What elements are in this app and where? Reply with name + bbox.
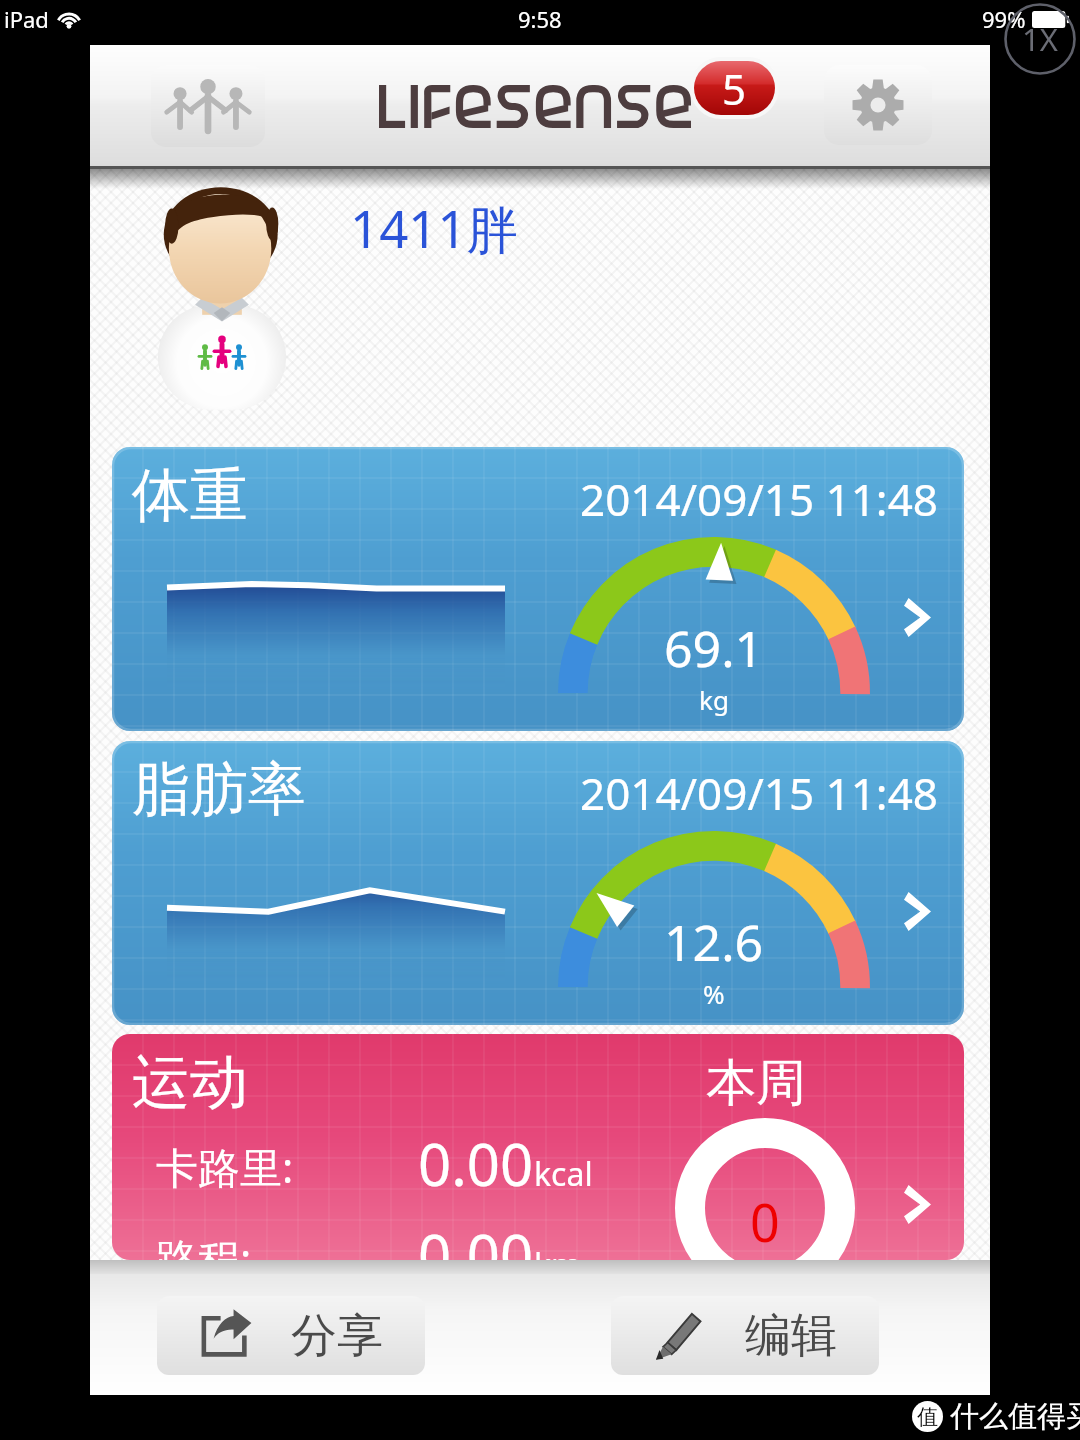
staticText: 分享 [291, 1307, 383, 1365]
button[interactable]: 运动 [112, 1034, 964, 1260]
staticText: 99% [982, 4, 1026, 34]
staticText: 9:58 [518, 4, 562, 34]
staticText: 1X [1022, 18, 1058, 60]
staticText: 5 [722, 61, 747, 114]
staticText: 本周 [706, 1052, 806, 1115]
staticText: % [703, 976, 725, 1011]
button[interactable]: 脂肪率 [112, 741, 964, 1025]
staticText: 路程: [156, 1229, 252, 1260]
staticText: iPad [4, 4, 49, 34]
staticText: 什么值得买 [950, 1398, 1080, 1435]
staticText: 69.1 [664, 614, 764, 682]
staticText: 0.00 [418, 1124, 534, 1203]
staticText: 编辑 [745, 1307, 837, 1365]
staticText: 卡路里: [156, 1138, 294, 1195]
staticText: 2014/09/15 11:48 [580, 763, 938, 823]
staticText: 0.00 [418, 1215, 534, 1260]
button[interactable]: Settings [824, 65, 932, 145]
staticText: 体重 [132, 459, 248, 532]
button[interactable]: 分享 [157, 1296, 425, 1375]
button[interactable]: Friends [151, 65, 265, 147]
staticText: 脂肪率 [132, 753, 306, 826]
button[interactable]: 1411胖 [90, 169, 990, 447]
button[interactable]: 编辑 [611, 1296, 879, 1375]
staticText: 1411胖 [350, 193, 518, 263]
staticText: 值 [917, 1404, 938, 1430]
button[interactable]: 体重 [112, 447, 964, 731]
staticText: kcal [534, 1152, 593, 1196]
staticText: 2014/09/15 11:48 [580, 469, 938, 529]
staticText: 12.6 [664, 908, 764, 976]
staticText: 0 [750, 1186, 780, 1257]
staticText: km [534, 1243, 582, 1260]
staticText: 运动 [132, 1046, 248, 1119]
button[interactable]: Zoom 1X [1004, 3, 1076, 75]
staticText: kg [699, 682, 729, 717]
